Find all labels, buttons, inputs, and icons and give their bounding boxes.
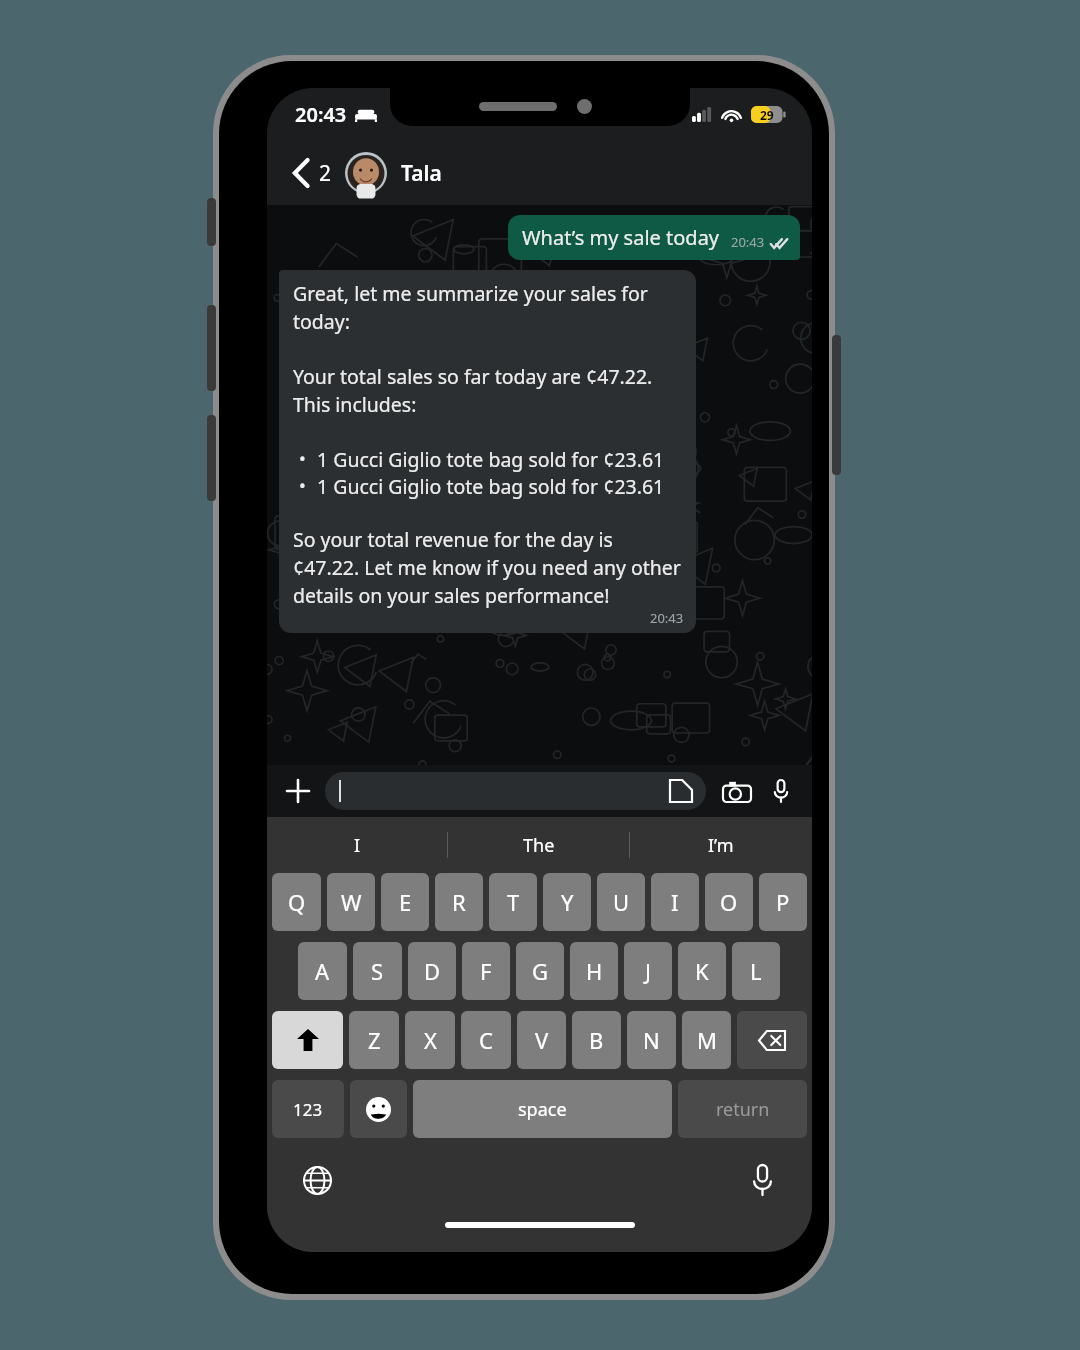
button[interactable]: F (462, 942, 510, 1000)
button[interactable]: T (489, 873, 537, 931)
button[interactable]: Backspace (737, 1011, 807, 1069)
staticText: Q (288, 887, 306, 917)
staticText: C (479, 1025, 493, 1055)
staticText: T (507, 887, 520, 917)
staticText: O (720, 887, 738, 917)
button[interactable]: E (381, 873, 429, 931)
staticText: R (452, 887, 466, 917)
button[interactable]: Attach (281, 774, 315, 808)
button[interactable]: Q (272, 873, 321, 931)
button[interactable]: B (572, 1011, 621, 1069)
staticText: Y (561, 887, 574, 917)
staticText: What’s my sale today (522, 224, 720, 251)
staticText: D (424, 956, 441, 986)
button[interactable]: Y (543, 873, 591, 931)
button[interactable]: space (413, 1080, 672, 1138)
staticText: The (523, 833, 555, 858)
button[interactable]: Back (285, 156, 319, 190)
staticText: G (532, 956, 549, 986)
button[interactable]: U (597, 873, 645, 931)
staticText: • (299, 473, 306, 498)
button[interactable]: return (678, 1080, 807, 1138)
staticText: P (776, 887, 790, 917)
staticText: J (645, 956, 652, 986)
staticText: Great, let me summarize your sales for t… (293, 280, 684, 335)
button[interactable]: I (267, 817, 448, 873)
button[interactable]: Emoji (350, 1080, 407, 1138)
button[interactable]: A (298, 942, 347, 1000)
button[interactable]: N (627, 1011, 676, 1069)
button[interactable]: I’m (630, 817, 812, 873)
staticText: L (750, 956, 762, 986)
staticText: So your total revenue for the day is ¢47… (293, 526, 684, 609)
button[interactable]: S (353, 942, 402, 1000)
button[interactable]: D (408, 942, 456, 1000)
button[interactable]: C (461, 1011, 511, 1069)
button[interactable]: Great, let me summarize your sales for t… (279, 270, 696, 633)
staticText: K (695, 956, 709, 986)
staticText: 20:43 (731, 233, 765, 251)
staticText: Tala (401, 159, 442, 188)
staticText: I (354, 833, 361, 858)
button[interactable]: R (435, 873, 483, 931)
button[interactable]: Z (349, 1011, 399, 1069)
button[interactable]: V (517, 1011, 566, 1069)
staticText: F (480, 956, 492, 986)
button[interactable]: Dictation (742, 1160, 782, 1200)
staticText: 29 (760, 107, 774, 123)
staticText: 1 Gucci Giglio tote bag sold for ¢23.61 (317, 473, 665, 500)
staticText: N (643, 1025, 660, 1055)
button[interactable]: H (570, 942, 618, 1000)
button[interactable]: 123 (272, 1080, 344, 1138)
button[interactable]: Change keyboard (297, 1160, 337, 1200)
staticText: I (671, 887, 679, 917)
staticText: 2 (319, 159, 332, 188)
staticText: W (341, 887, 362, 917)
button[interactable]: W (327, 873, 375, 931)
button[interactable]: What’s my sale today (508, 215, 800, 260)
button[interactable]: J (624, 942, 672, 1000)
staticText: 20:43 (650, 609, 684, 627)
staticText: I’m (708, 833, 734, 858)
button[interactable]: Back (267, 141, 812, 205)
button[interactable]: O (705, 873, 753, 931)
button[interactable]: K (678, 942, 726, 1000)
staticText: H (586, 956, 603, 986)
staticText: A (315, 956, 330, 986)
staticText: X (424, 1025, 437, 1055)
staticText: return (716, 1097, 770, 1122)
staticText: S (371, 956, 384, 986)
button[interactable]: X (405, 1011, 455, 1069)
button[interactable]: G (516, 942, 564, 1000)
button[interactable]: Camera (720, 774, 754, 808)
staticText: 1 Gucci Giglio tote bag sold for ¢23.61 (317, 446, 665, 473)
button[interactable] (325, 772, 706, 810)
button[interactable]: Voice message (764, 774, 798, 808)
button[interactable]: I (651, 873, 699, 931)
staticText: U (613, 887, 630, 917)
button[interactable]: Shift (272, 1011, 343, 1069)
staticText: Z (368, 1025, 381, 1055)
staticText: Your total sales so far today are ¢47.22… (293, 363, 684, 418)
staticText: E (399, 887, 412, 917)
staticText: • (299, 446, 306, 471)
staticText: M (697, 1025, 717, 1055)
button[interactable]: P (759, 873, 807, 931)
staticText: 20:43 (295, 101, 347, 128)
button[interactable]: The (448, 817, 630, 873)
staticText: V (535, 1025, 549, 1055)
button[interactable]: M (682, 1011, 731, 1069)
button[interactable]: L (732, 942, 780, 1000)
staticText: B (589, 1025, 604, 1055)
staticText: 123 (293, 1098, 323, 1121)
staticText: space (518, 1097, 567, 1122)
